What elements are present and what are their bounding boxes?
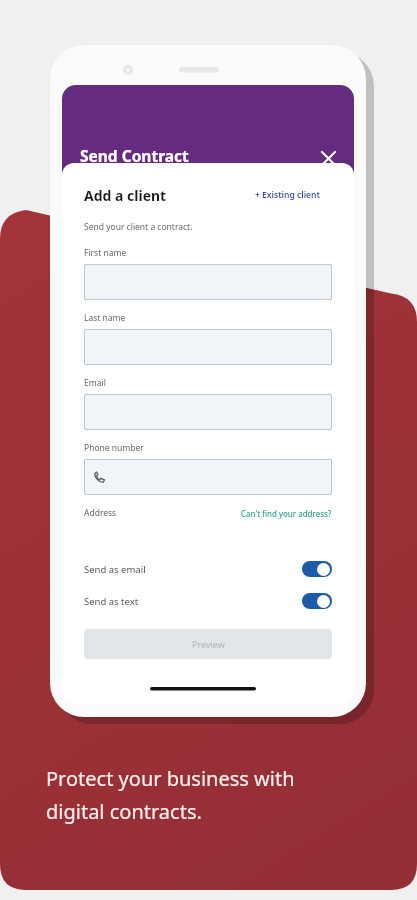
button[interactable]: Close	[312, 142, 344, 174]
button[interactable]	[84, 264, 332, 300]
button[interactable]: Can't find your address?	[241, 508, 332, 519]
staticText: Phone number	[84, 442, 144, 454]
staticText: Protect your business with	[46, 765, 295, 792]
button[interactable]: + Existing client	[243, 181, 332, 209]
staticText: First name	[84, 247, 127, 259]
staticText: Send as email	[84, 563, 146, 576]
staticText: Send your client a contract.	[84, 221, 193, 233]
staticText: Send as text	[84, 595, 139, 608]
staticText: digital contracts.	[46, 798, 202, 825]
button[interactable]: Send as email	[84, 561, 332, 577]
button[interactable]	[84, 459, 332, 495]
staticText: Address	[84, 507, 117, 519]
button[interactable]: Preview	[84, 629, 332, 659]
staticText: Send Contract	[80, 145, 189, 166]
staticText: Can't find your address?	[241, 508, 332, 519]
staticText: Last name	[84, 312, 126, 324]
button[interactable]	[84, 329, 332, 365]
button[interactable]: Send as text	[84, 593, 332, 609]
staticText: Preview	[192, 638, 225, 650]
staticText: Add a client	[84, 186, 167, 205]
staticText: Email	[84, 377, 106, 389]
button[interactable]	[84, 394, 332, 430]
staticText: + Existing client	[255, 189, 320, 201]
